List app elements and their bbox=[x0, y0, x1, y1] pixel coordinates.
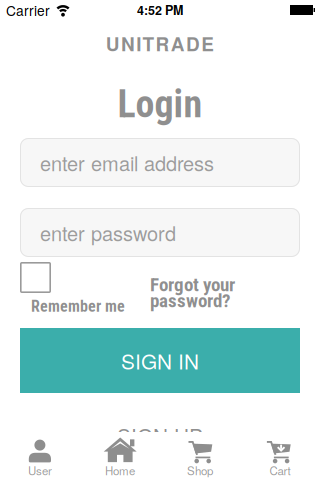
button[interactable]: Home bbox=[80, 432, 160, 480]
button[interactable]: Sign up bbox=[0, 420, 320, 450]
button[interactable]: Cart bbox=[240, 432, 320, 480]
button[interactable]: Sign in bbox=[20, 328, 300, 393]
staticText: enter email address bbox=[40, 148, 214, 177]
staticText: T bbox=[142, 30, 154, 57]
button[interactable]: enter email address bbox=[20, 138, 300, 187]
staticText: U bbox=[106, 30, 120, 57]
staticText: enter password bbox=[40, 218, 176, 247]
staticText: I bbox=[136, 30, 141, 57]
staticText: password? bbox=[150, 289, 230, 312]
button[interactable]: enter password bbox=[20, 208, 300, 257]
staticText: Remember me bbox=[31, 297, 125, 316]
staticText: E bbox=[201, 30, 214, 57]
staticText: Home bbox=[105, 462, 135, 478]
button[interactable]: Shop bbox=[160, 432, 240, 480]
button[interactable]: Forgot your password? bbox=[150, 273, 240, 311]
staticText: D bbox=[186, 30, 200, 57]
staticText: User bbox=[28, 462, 52, 478]
staticText: A bbox=[171, 30, 185, 57]
staticText: Login bbox=[117, 82, 202, 126]
staticText: 4:52 PM bbox=[137, 1, 183, 19]
staticText: Forgot your bbox=[150, 273, 235, 296]
staticText: R bbox=[156, 30, 170, 57]
staticText: Carrier bbox=[6, 0, 50, 20]
button[interactable]: Remember me bbox=[20, 262, 51, 293]
staticText: SIGN IN bbox=[121, 346, 199, 375]
staticText: Shop bbox=[187, 462, 213, 478]
staticText: Cart bbox=[269, 462, 290, 478]
button[interactable]: User bbox=[0, 432, 80, 480]
staticText: SIGN UP bbox=[117, 420, 203, 450]
staticText: N bbox=[121, 30, 135, 57]
